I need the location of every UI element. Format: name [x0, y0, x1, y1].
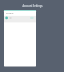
staticText: Profile	[6, 11, 14, 14]
staticText: Account Settings	[22, 4, 43, 7]
button[interactable]: Profile account	[4, 16, 36, 22]
